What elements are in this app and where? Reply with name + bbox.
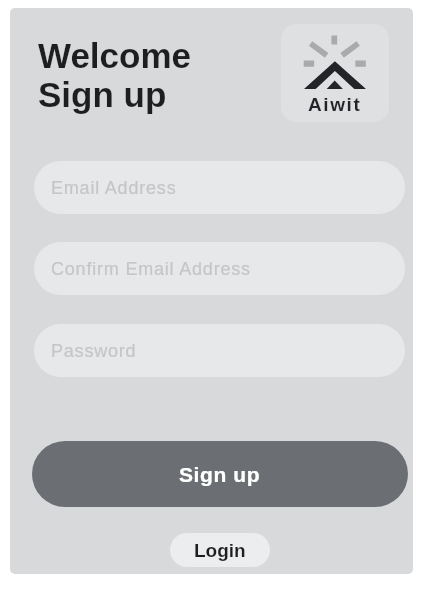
button[interactable]: Email Address: [34, 161, 405, 214]
staticText: Welcome: [38, 36, 192, 75]
button[interactable]: Aiwit logo: [281, 24, 389, 122]
staticText: Password: [51, 341, 137, 361]
staticText: Confirm Email Address: [51, 259, 251, 279]
button[interactable]: Password: [34, 324, 405, 377]
staticText: Email Address: [51, 178, 177, 198]
button[interactable]: Sign up: [32, 441, 408, 507]
staticText: Sign up: [38, 75, 167, 114]
button[interactable]: Confirm Email Address: [34, 242, 405, 295]
staticText: Sign up: [179, 463, 261, 486]
staticText: Aiwit: [308, 94, 362, 115]
button[interactable]: Login: [170, 533, 270, 567]
staticText: Login: [194, 540, 246, 561]
